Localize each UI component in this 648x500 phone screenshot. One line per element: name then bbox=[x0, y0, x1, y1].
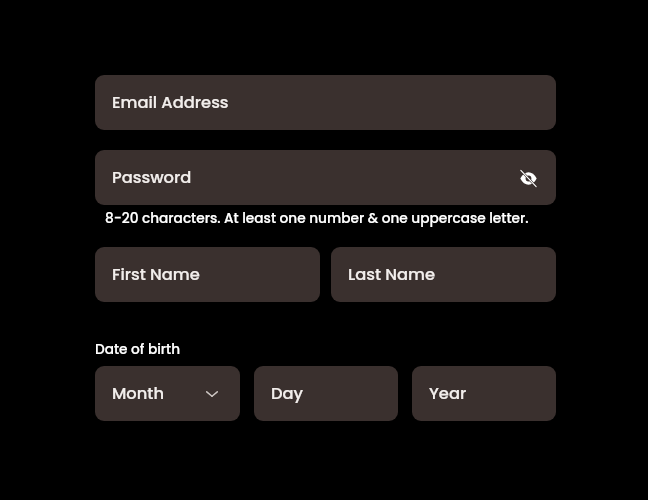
button[interactable]: Last Name bbox=[331, 247, 556, 302]
staticText: Email Address bbox=[112, 91, 229, 114]
staticText: Day bbox=[271, 382, 304, 405]
button[interactable]: Year bbox=[412, 366, 556, 421]
staticText: Last Name bbox=[348, 263, 436, 286]
staticText: Password bbox=[112, 166, 192, 189]
staticText: 8-20 characters. At least one number & o… bbox=[105, 209, 529, 228]
staticText: Year bbox=[429, 382, 467, 405]
button[interactable]: Email Address bbox=[95, 75, 556, 130]
button[interactable]: Show password bbox=[509, 159, 547, 197]
staticText: First Name bbox=[112, 263, 200, 286]
staticText: Date of birth bbox=[95, 340, 181, 359]
button[interactable]: Month bbox=[95, 366, 240, 421]
button[interactable]: Day bbox=[254, 366, 398, 421]
button[interactable]: Password bbox=[95, 150, 556, 205]
staticText: Month bbox=[112, 382, 164, 405]
button[interactable]: First Name bbox=[95, 247, 320, 302]
button[interactable]: Select month bbox=[197, 379, 227, 409]
